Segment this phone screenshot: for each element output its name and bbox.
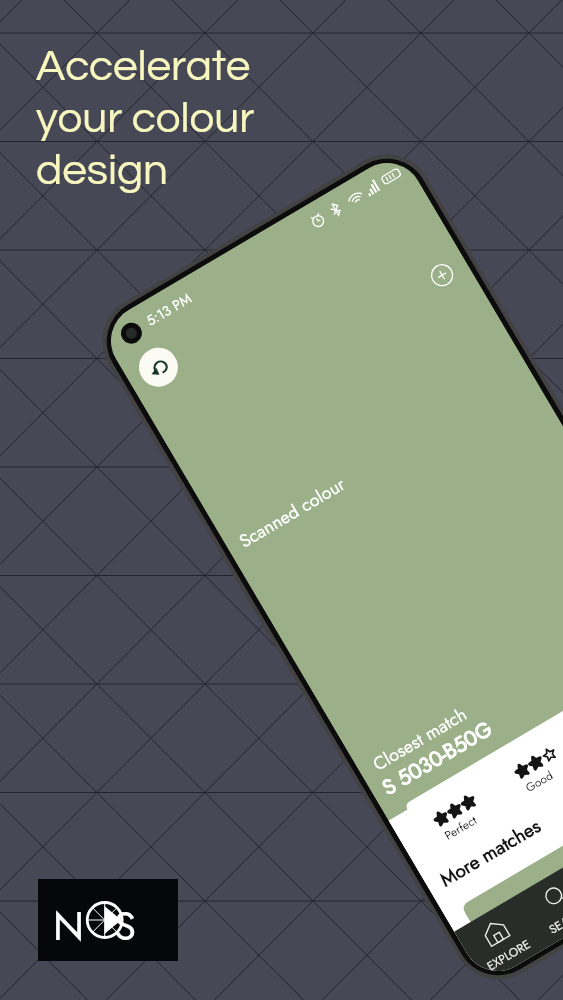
staticText: Scanned colour	[234, 471, 350, 554]
staticText: N	[53, 897, 84, 943]
staticText: 5:13 PM	[142, 288, 196, 331]
staticText: Good	[522, 766, 556, 796]
button[interactable]: EXPLORE	[454, 896, 543, 980]
button[interactable]: SEARCH	[514, 861, 563, 944]
button[interactable]: Back	[132, 340, 185, 394]
button[interactable]: Add colour	[426, 259, 458, 291]
staticText: More matches	[435, 812, 546, 893]
button[interactable]	[461, 747, 563, 945]
staticText: S 5030-B50G	[376, 714, 498, 803]
staticText: S	[114, 897, 136, 943]
staticText: Closest match	[368, 701, 472, 777]
staticText: SEARCH	[545, 900, 563, 938]
staticText: Accelerate your colour design	[36, 44, 255, 194]
staticText: EXPLORE	[483, 935, 533, 974]
staticText: Perfect	[441, 811, 480, 844]
